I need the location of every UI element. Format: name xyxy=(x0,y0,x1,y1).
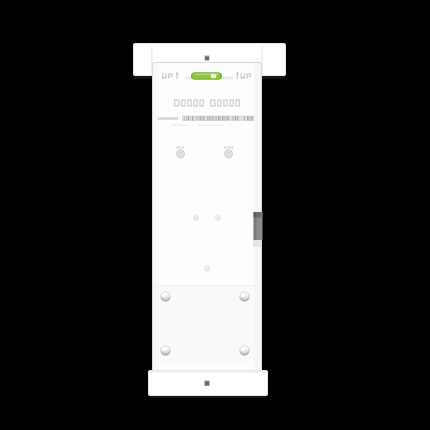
button[interactable]: Ruijie Reyee outdoor access point produc… xyxy=(0,0,430,430)
